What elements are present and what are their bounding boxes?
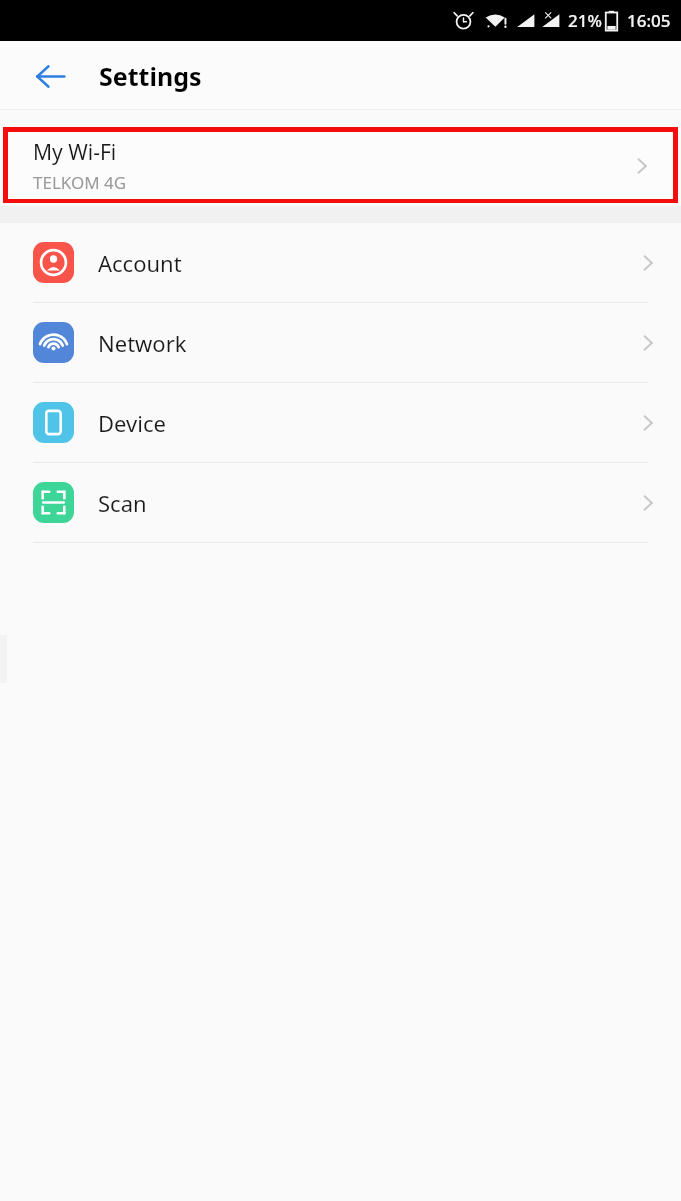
staticText: Settings [99, 59, 202, 93]
button[interactable]: My Wi-Fi [8, 133, 673, 199]
staticText: Scan [98, 488, 147, 518]
staticText: 16:05 [627, 9, 671, 32]
button[interactable]: Scan [0, 463, 681, 542]
staticText: Device [98, 408, 166, 438]
button[interactable]: Back [22, 48, 78, 104]
staticText: TELKOM 4G [33, 171, 127, 194]
button[interactable]: Network [0, 303, 681, 382]
button[interactable]: Device [0, 383, 681, 462]
staticText: My Wi-Fi [33, 138, 117, 167]
staticText: Network [98, 328, 187, 358]
button[interactable]: Account [0, 223, 681, 302]
staticText: Account [98, 248, 182, 278]
staticText: 21% [568, 9, 602, 32]
